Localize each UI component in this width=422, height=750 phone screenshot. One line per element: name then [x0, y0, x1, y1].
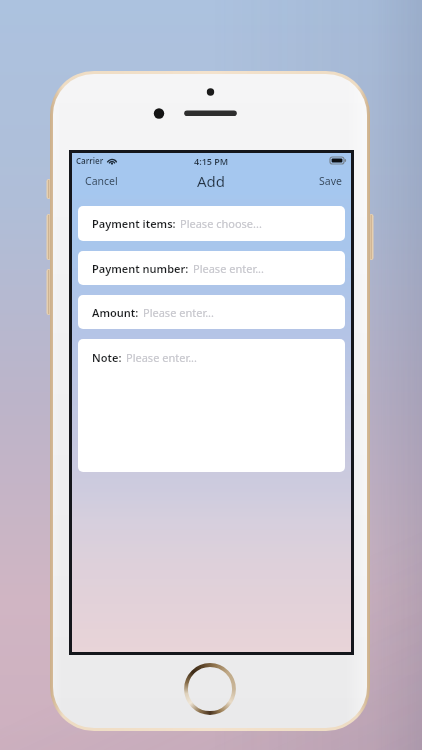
button[interactable]: Payment items:: [78, 206, 345, 241]
staticText: Amount:: [92, 305, 139, 320]
staticText: Please choose...: [180, 216, 262, 231]
staticText: Note:: [92, 350, 122, 365]
button[interactable]: Amount:: [78, 295, 345, 329]
staticText: Payment number:: [92, 261, 189, 276]
button[interactable]: Save: [310, 169, 351, 193]
staticText: 4:15 PM: [194, 155, 229, 167]
staticText: Save: [319, 174, 342, 188]
staticText: Please enter...: [126, 350, 198, 365]
staticText: Please enter...: [193, 261, 265, 276]
staticText: Add: [197, 171, 226, 191]
staticText: Please enter...: [143, 305, 215, 320]
staticText: Cancel: [85, 174, 118, 188]
button[interactable]: Note:: [78, 339, 345, 472]
button[interactable]: Payment number:: [78, 251, 345, 285]
staticText: Carrier: [76, 155, 104, 166]
staticText: Payment items:: [92, 216, 176, 231]
button[interactable]: Cancel: [72, 169, 131, 193]
